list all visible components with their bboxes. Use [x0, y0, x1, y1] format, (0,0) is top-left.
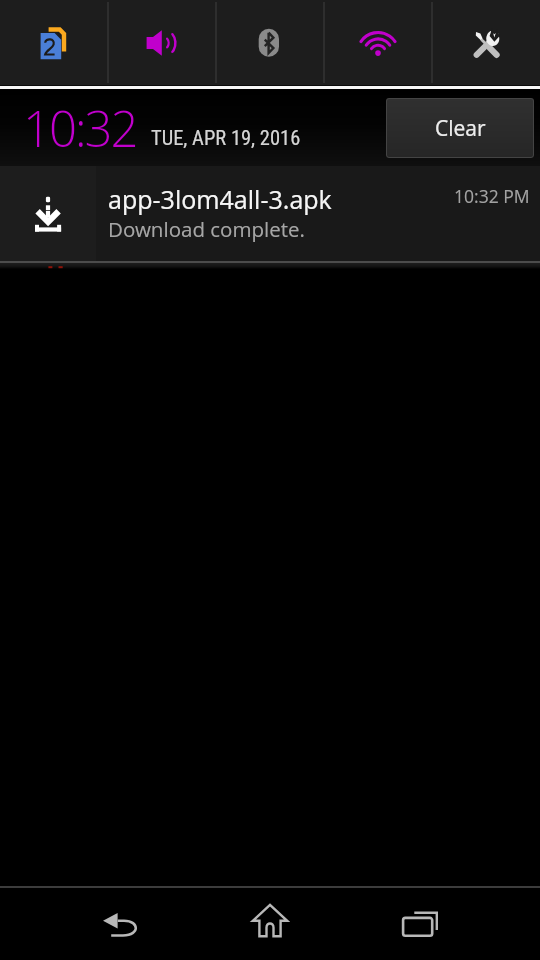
button[interactable]: Home	[233, 891, 307, 957]
button[interactable]: app-3lom4all-3.apk	[0, 166, 540, 261]
button[interactable]: Recent apps	[383, 891, 457, 957]
staticText: 10:32 PM	[454, 184, 530, 208]
button[interactable]: Back	[83, 891, 157, 957]
button[interactable]: Wi-Fi	[324, 0, 432, 85]
button[interactable]: Clear	[386, 98, 534, 158]
button[interactable]: Dual SIM card	[0, 0, 108, 85]
button[interactable]: Sound	[108, 0, 216, 85]
staticText: TUE, APR 19, 2016	[151, 126, 301, 150]
staticText: 10:32	[23, 95, 137, 162]
staticText: app-3lom4all-3.apk	[108, 182, 332, 216]
staticText: Download complete.	[108, 215, 305, 243]
button[interactable]: Bluetooth	[216, 0, 324, 85]
staticText: Clear	[435, 114, 486, 143]
button[interactable]: Settings	[432, 0, 540, 85]
